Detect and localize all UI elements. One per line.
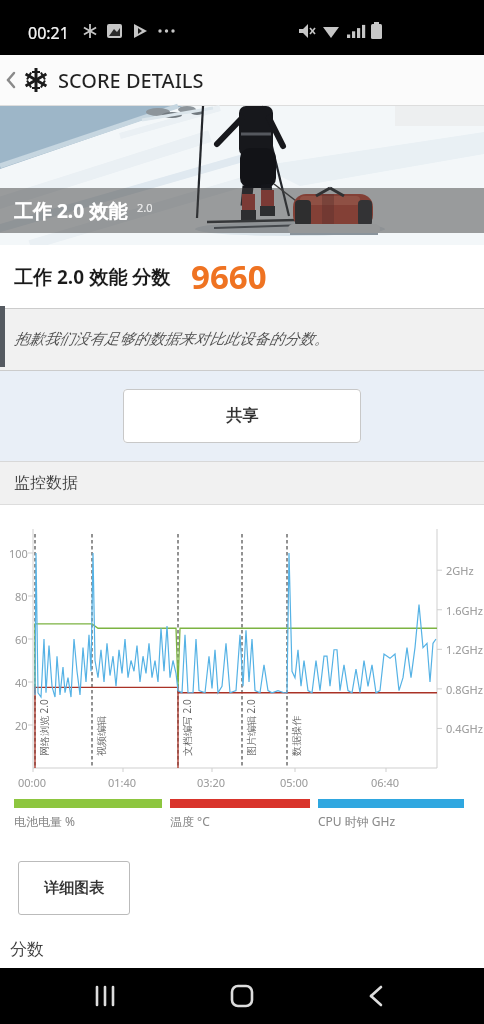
staticText: SCORE DETAILS [58,67,204,94]
staticText: 00:21 [28,22,69,44]
button[interactable] [162,968,323,1024]
staticText: 温度 °C [170,813,210,829]
staticText: 40 [15,675,28,690]
button[interactable]: 详细图表 [18,861,130,915]
staticText: 05:00 [280,775,309,790]
staticText: 60 [15,632,28,647]
staticText: 20 [15,718,28,733]
staticText: 电池电量 % [14,813,76,829]
staticText: 0.4GHz [446,721,483,736]
staticText: 分数 [10,939,44,960]
staticText: 06:40 [371,775,400,790]
staticText: 00:00 [18,775,47,790]
button[interactable] [0,968,162,1024]
staticText: 详细图表 [44,879,104,898]
button[interactable] [323,968,484,1024]
button[interactable]: SCORE DETAILS [0,55,484,105]
staticText: 9660 [191,254,267,299]
staticText: 1.6GHz [446,603,483,618]
staticText: 03:20 [197,775,226,790]
staticText: 100 [9,546,28,561]
button[interactable]: 共享 [123,389,361,443]
staticText: 2GHz [446,563,474,578]
staticText: 监控数据 [14,473,78,493]
staticText: 抱歉我们没有足够的数据来对比此设备的分数。 [14,330,329,349]
staticText: 工作 2.0 效能 分数 [14,264,170,290]
staticText: 80 [15,589,28,604]
staticText: 共享 [226,406,258,426]
staticText: 2.0 [137,200,153,215]
staticText: 1.2GHz [446,642,483,657]
staticText: 0.8GHz [446,682,483,697]
staticText: CPU 时钟 GHz [318,813,396,829]
staticText: 01:40 [108,775,137,790]
staticText: 工作 2.0 效能 [14,198,127,224]
